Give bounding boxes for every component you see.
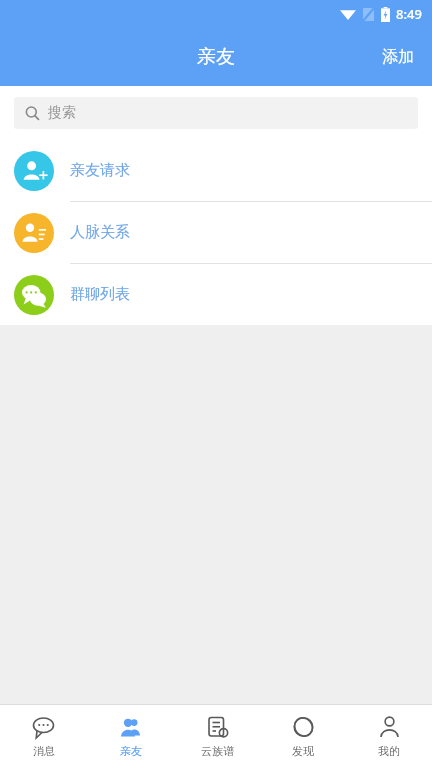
staticText: 亲友请求 bbox=[70, 161, 130, 180]
button[interactable]: 亲友请求 bbox=[0, 140, 432, 201]
staticText: 我的 bbox=[378, 744, 400, 758]
button[interactable]: 人脉关系 bbox=[0, 202, 432, 263]
button[interactable]: 添加 bbox=[364, 37, 432, 77]
staticText: 添加 bbox=[382, 47, 414, 67]
staticText: 亲友 bbox=[197, 45, 235, 69]
button[interactable]: 群聊列表 bbox=[0, 264, 432, 325]
button[interactable]: 发现 bbox=[260, 705, 346, 768]
staticText: 群聊列表 bbox=[70, 285, 130, 304]
button[interactable]: 亲友 bbox=[87, 705, 174, 768]
staticText: 消息 bbox=[33, 744, 55, 758]
staticText: 人脉关系 bbox=[70, 223, 130, 242]
staticText: 发现 bbox=[292, 744, 314, 758]
staticText: 亲友 bbox=[120, 744, 142, 758]
button[interactable]: 消息 bbox=[0, 705, 87, 768]
button[interactable]: 搜索 bbox=[14, 97, 418, 129]
button[interactable]: 云族谱 bbox=[174, 705, 260, 768]
staticText: 搜索 bbox=[48, 104, 76, 122]
staticText: 8:49 bbox=[396, 5, 422, 23]
button[interactable]: 我的 bbox=[346, 705, 432, 768]
staticText: 云族谱 bbox=[201, 744, 234, 758]
